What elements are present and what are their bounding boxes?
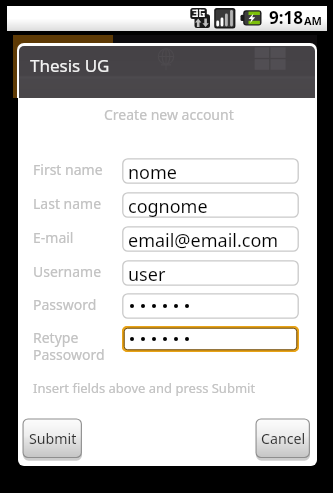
button[interactable] (122, 293, 299, 319)
staticText: Cancel (261, 429, 306, 448)
button[interactable]: Submit (22, 418, 83, 460)
staticText: Last name (33, 194, 125, 213)
staticText: Submit (29, 429, 77, 448)
button[interactable]: email@email.com (122, 226, 299, 252)
staticText: Insert fields above and press Submit (33, 379, 256, 397)
staticText: nome (128, 160, 177, 184)
staticText: user (128, 262, 166, 286)
staticText: AM (304, 13, 322, 28)
staticText: Username (33, 262, 125, 281)
button[interactable]: user (122, 260, 299, 286)
staticText: Password (33, 295, 125, 314)
button[interactable]: Cancel (255, 418, 311, 460)
staticText: First name (33, 160, 125, 179)
staticText: Retype Passoword (33, 328, 125, 364)
button[interactable]: nome (122, 158, 299, 184)
button[interactable] (122, 326, 299, 352)
staticText: cognome (128, 194, 208, 218)
staticText: Create new account (104, 105, 234, 124)
staticText: 9:18 (269, 6, 303, 29)
staticText: Thesis UG (30, 54, 110, 77)
button[interactable]: cognome (122, 192, 299, 218)
staticText: E-mail (33, 228, 125, 247)
staticText: email@email.com (128, 228, 279, 252)
